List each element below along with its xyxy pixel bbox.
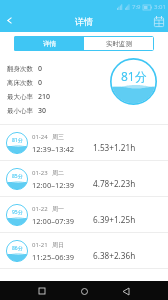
button[interactable]: 86分 bbox=[0, 233, 168, 268]
staticText: 最大心率 bbox=[7, 93, 33, 101]
staticText: 95分 bbox=[12, 209, 23, 216]
staticText: 周三 bbox=[52, 133, 64, 141]
staticText: 周日 bbox=[52, 241, 64, 249]
staticText: 86分 bbox=[12, 245, 23, 252]
staticText: 4.78+2.23h bbox=[93, 178, 136, 189]
staticText: 7:9 bbox=[132, 3, 141, 11]
staticText: 85分 bbox=[12, 173, 23, 180]
staticText: 12:39–13:42 bbox=[32, 144, 75, 154]
staticText: 01-24 bbox=[32, 133, 48, 141]
staticText: 01-23 bbox=[32, 169, 48, 177]
staticText: 0 bbox=[38, 64, 43, 74]
staticText: 6.38+2.36h bbox=[93, 250, 136, 261]
button[interactable]: 95分 bbox=[0, 197, 168, 232]
staticText: 周二 bbox=[52, 169, 64, 177]
staticText: 30 bbox=[38, 106, 47, 116]
button[interactable]: 85分 bbox=[0, 161, 168, 196]
staticText: 详情 bbox=[75, 16, 93, 27]
staticText: 实时监测 bbox=[106, 40, 132, 48]
button[interactable]: Back bbox=[0, 13, 19, 32]
staticText: 81分 bbox=[12, 137, 23, 144]
staticText: 周一 bbox=[52, 205, 64, 213]
button[interactable]: 实时监测 bbox=[84, 36, 154, 51]
staticText: 翻身次数 bbox=[7, 65, 33, 73]
staticText: 1.53+1.21h bbox=[93, 142, 136, 153]
staticText: 详情 bbox=[43, 40, 56, 48]
staticText: 最小心率 bbox=[7, 107, 33, 115]
staticText: 3:01 bbox=[154, 3, 166, 11]
staticText: 01-21 bbox=[32, 241, 48, 249]
staticText: 11:25–06:39 bbox=[32, 252, 75, 262]
staticText: 01-22 bbox=[32, 205, 48, 213]
staticText: 离床次数 bbox=[7, 79, 33, 87]
staticText: 81分 bbox=[121, 68, 147, 84]
button[interactable]: Back bbox=[118, 283, 134, 299]
staticText: 12:00–12:39 bbox=[32, 180, 75, 190]
staticText: 0 bbox=[38, 78, 43, 88]
staticText: 6.39+1.25h bbox=[93, 214, 136, 225]
button[interactable]: Home bbox=[76, 283, 92, 299]
button[interactable]: 详情 bbox=[14, 36, 84, 51]
staticText: 12:00–07:39 bbox=[32, 216, 75, 226]
button[interactable]: Calendar bbox=[149, 13, 168, 32]
staticText: 210 bbox=[38, 92, 51, 102]
button[interactable]: 81分 bbox=[0, 125, 168, 160]
button[interactable]: Recents bbox=[34, 283, 50, 299]
